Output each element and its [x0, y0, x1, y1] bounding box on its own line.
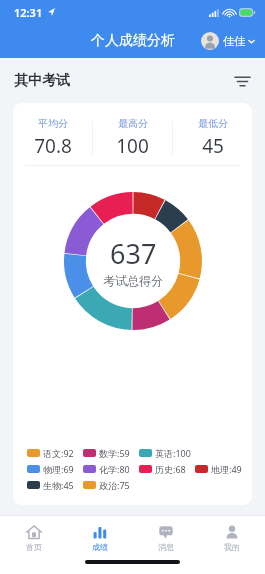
- button[interactable]: 化学:80: [83, 463, 130, 475]
- staticText: 英语:100: [155, 447, 191, 459]
- staticText: 历史:68: [155, 463, 186, 475]
- staticText: 个人成绩分析: [91, 32, 175, 50]
- staticText: 语文:92: [43, 447, 74, 459]
- button[interactable]: 平均分: [13, 117, 92, 159]
- button[interactable]: 历史:68: [139, 463, 186, 475]
- staticText: 最高分: [118, 117, 148, 130]
- staticText: 数学:59: [99, 447, 130, 459]
- button[interactable]: 最高分: [93, 117, 172, 159]
- staticText: 70.8: [34, 133, 72, 159]
- staticText: 消息: [158, 542, 174, 552]
- button[interactable]: 成绩: [67, 516, 133, 560]
- button[interactable]: 我的: [199, 516, 265, 560]
- staticText: 考试总得分: [103, 273, 163, 288]
- staticText: 12:31: [14, 5, 43, 20]
- staticText: 化学:80: [99, 463, 130, 475]
- button[interactable]: 消息: [133, 516, 199, 560]
- button[interactable]: 首页: [0, 516, 67, 560]
- staticText: 100: [116, 133, 149, 159]
- staticText: 45: [202, 133, 224, 159]
- staticText: 生物:45: [43, 479, 74, 491]
- staticText: 政治:75: [99, 479, 130, 491]
- staticText: 成绩: [92, 542, 108, 552]
- staticText: 佳佳: [223, 34, 245, 48]
- staticText: 首页: [26, 542, 42, 552]
- staticText: 我的: [224, 542, 240, 552]
- button[interactable]: 数学:59: [83, 447, 130, 459]
- staticText: 637: [110, 235, 157, 272]
- staticText: 平均分: [38, 117, 68, 130]
- button[interactable]: 地理:49: [195, 463, 242, 475]
- staticText: 其中考试: [14, 72, 70, 90]
- staticText: 物理:69: [43, 463, 74, 475]
- button[interactable]: 最低分: [173, 117, 252, 159]
- staticText: 地理:49: [211, 463, 242, 475]
- button[interactable]: 政治:75: [83, 479, 130, 491]
- button[interactable]: Filter: [229, 68, 255, 94]
- staticText: 最低分: [198, 117, 228, 130]
- button[interactable]: 生物:45: [27, 479, 74, 491]
- button[interactable]: 英语:100: [139, 447, 191, 459]
- button[interactable]: 物理:69: [27, 463, 74, 475]
- button[interactable]: 语文:92: [27, 447, 74, 459]
- button[interactable]: 佳佳: [199, 30, 257, 52]
